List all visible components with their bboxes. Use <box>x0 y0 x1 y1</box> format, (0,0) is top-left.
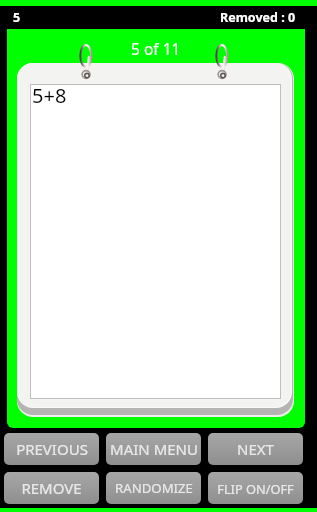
button[interactable]: NEXT <box>208 433 303 465</box>
staticText: PREVIOUS <box>16 439 88 459</box>
staticText: NEXT <box>237 439 274 459</box>
staticText: FLIP ON/OFF <box>217 480 294 497</box>
staticText: RANDOMIZE <box>115 479 193 497</box>
staticText: REMOVE <box>21 478 82 498</box>
button[interactable]: MAIN MENU <box>106 433 201 465</box>
staticText: MAIN MENU <box>110 439 198 459</box>
staticText: Removed : 0 <box>220 9 296 26</box>
button[interactable]: Flash card 5 of 11: 5+8 <box>17 63 291 407</box>
button[interactable]: FLIP ON/OFF <box>208 472 303 504</box>
button[interactable]: REMOVE <box>4 472 99 504</box>
staticText: 5 <box>13 9 21 26</box>
button[interactable]: PREVIOUS <box>4 433 99 465</box>
staticText: 5+8 <box>32 82 67 109</box>
staticText: 5 of 11 <box>131 38 181 59</box>
button[interactable]: RANDOMIZE <box>106 472 201 504</box>
